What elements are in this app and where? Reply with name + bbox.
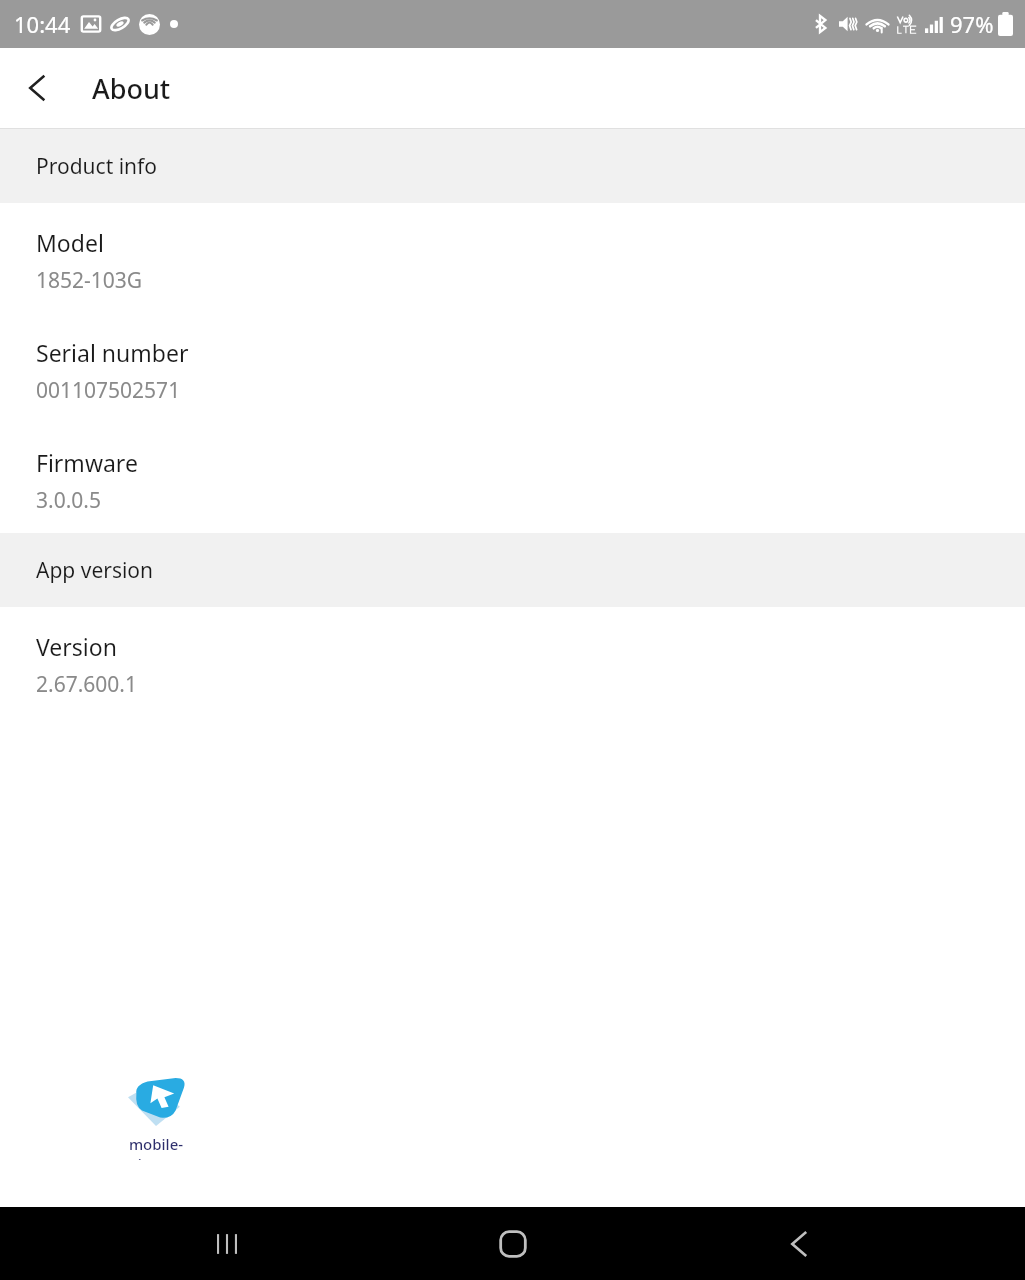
staticText: 3.0.0.5 <box>36 486 101 515</box>
staticText: Version <box>36 631 117 662</box>
staticText: 001107502571 <box>36 376 181 405</box>
button[interactable]: Version <box>0 607 1025 717</box>
staticText: 1852-103G <box>36 266 143 295</box>
button[interactable]: Back <box>10 60 66 116</box>
staticText: 10:44 <box>14 9 71 39</box>
button[interactable]: Model <box>0 203 1025 313</box>
staticText: Firmware <box>36 447 138 478</box>
button[interactable]: Serial number <box>0 313 1025 423</box>
staticText: Model <box>36 227 104 258</box>
button[interactable]: Home <box>453 1207 573 1280</box>
staticText: About <box>92 70 171 107</box>
button[interactable]: Back <box>739 1207 859 1280</box>
staticText: Product info <box>36 152 158 181</box>
button[interactable]: Firmware <box>0 423 1025 533</box>
staticText: 97% <box>950 9 994 39</box>
staticText: 2.67.600.1 <box>36 670 137 699</box>
staticText: Serial number <box>36 337 189 368</box>
staticText: App version <box>36 556 154 585</box>
staticText: mobile-review.com <box>96 1134 216 1160</box>
button[interactable]: Recents <box>167 1207 287 1280</box>
